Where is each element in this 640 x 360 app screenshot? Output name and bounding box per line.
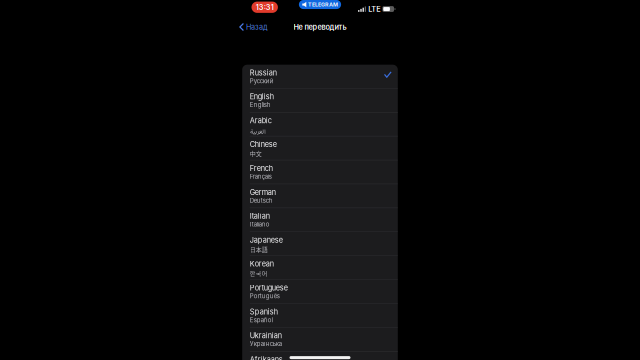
button[interactable]: Russian <box>242 65 398 89</box>
button[interactable]: Italian <box>242 208 398 232</box>
staticText: Italiano <box>250 221 270 228</box>
button[interactable]: Portuguese <box>242 280 398 304</box>
staticText: 日本語 <box>250 245 268 253</box>
button[interactable]: French <box>242 160 398 184</box>
staticText: Français <box>250 173 272 180</box>
staticText: TELEGRAM <box>308 1 338 8</box>
staticText: Español <box>250 316 273 324</box>
button[interactable]: Korean <box>242 256 398 280</box>
button[interactable]: Ukrainian <box>242 328 398 351</box>
button[interactable]: Afrikaans <box>242 351 398 360</box>
staticText: German <box>250 188 276 197</box>
button[interactable]: Japanese <box>242 232 398 256</box>
button[interactable]: English <box>242 89 398 112</box>
staticText: Spanish <box>250 307 278 316</box>
staticText: Afrikaans <box>250 355 283 360</box>
staticText: Russian <box>250 68 277 77</box>
staticText: Chinese <box>250 140 277 149</box>
staticText: Назад <box>246 23 268 31</box>
staticText: Arabic <box>250 116 272 125</box>
button[interactable]: Arabic <box>242 112 398 136</box>
staticText: 中文 <box>250 149 262 158</box>
staticText: Ukrainian <box>250 331 282 340</box>
staticText: French <box>250 164 273 173</box>
button[interactable]: Chinese <box>242 136 398 160</box>
staticText: Japanese <box>250 236 283 244</box>
staticText: Deutsch <box>250 197 273 204</box>
staticText: English <box>250 92 274 101</box>
staticText: Українська <box>250 340 282 348</box>
staticText: 13:31 <box>256 3 274 12</box>
staticText: Portuguese <box>250 283 288 292</box>
button[interactable]: Spanish <box>242 304 398 328</box>
staticText: Português <box>250 292 280 300</box>
staticText: Korean <box>250 259 274 268</box>
staticText: Italian <box>250 212 270 221</box>
button[interactable]: Назад <box>234 19 274 35</box>
button[interactable]: German <box>242 184 398 208</box>
staticText: Не переводить <box>293 23 346 31</box>
staticText: العربية <box>250 125 265 138</box>
staticText: 한국어 <box>250 269 268 277</box>
staticText: English <box>250 101 271 109</box>
staticText: Русский <box>250 77 274 85</box>
staticText: LTE <box>368 5 380 13</box>
